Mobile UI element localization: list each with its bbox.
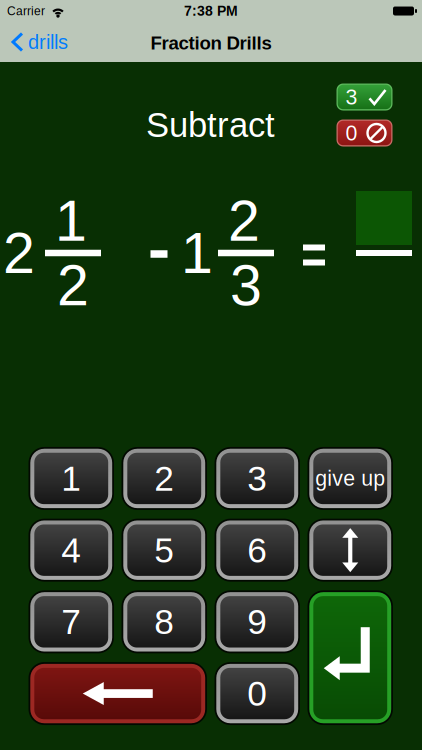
button[interactable]: 1 [28,447,114,510]
button[interactable]: 4 [28,519,114,582]
button[interactable]: Back to drills [0,31,68,53]
staticText: 1 [55,189,87,253]
staticText: 3 [247,459,267,498]
staticText: 0 [345,121,357,145]
staticText: 1 [61,459,81,498]
staticText: 2 [3,221,35,285]
button[interactable]: 5 [121,519,207,582]
button[interactable]: 0 [214,662,300,725]
button[interactable]: 7 [28,590,114,653]
staticText: 3 [230,253,262,317]
staticText: Fraction Drills [150,33,271,53]
button[interactable]: Flip fraction [307,519,393,582]
button[interactable]: Backspace [28,662,207,725]
staticText: Carrier [7,4,45,18]
staticText: 6 [247,530,267,570]
staticText: 7:38 PM [184,3,238,19]
button[interactable]: 2 [121,447,207,510]
staticText: 3 [345,85,357,109]
staticText: Subtract [146,106,275,144]
staticText: 2 [57,253,89,317]
staticText: 2 [154,459,174,498]
button[interactable]: 3 [214,447,300,510]
staticText: 1 [181,221,213,285]
button[interactable]: 6 [214,519,300,582]
button[interactable]: Enter [307,590,393,725]
staticText: 4 [61,530,81,570]
staticText: 2 [228,189,260,253]
staticText: 0 [247,674,267,713]
button[interactable]: give up [307,447,393,510]
button[interactable]: 8 [121,590,207,653]
staticText: drills [28,31,68,53]
staticText: 9 [247,602,267,642]
staticText: give up [315,466,385,490]
staticText: 8 [154,602,174,642]
staticText: 5 [154,530,174,570]
button[interactable]: 9 [214,590,300,653]
staticText: 7 [61,602,81,642]
